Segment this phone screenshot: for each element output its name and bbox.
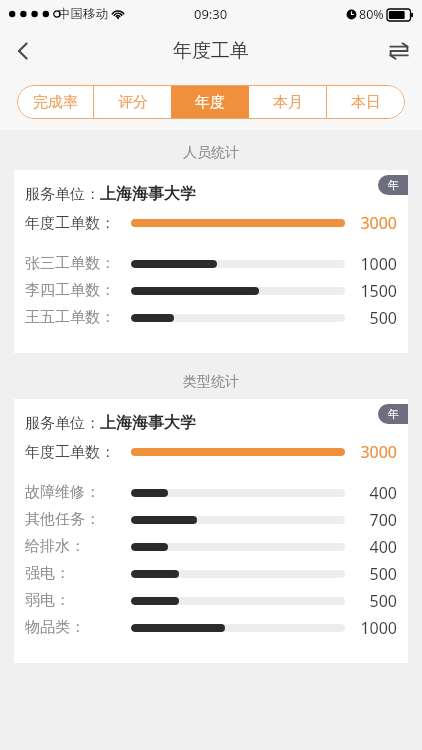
button[interactable]: 本日 xyxy=(327,85,405,119)
staticText: 年度工单 xyxy=(173,39,249,63)
button[interactable]: 年度 xyxy=(171,85,249,119)
staticText: 物品类： xyxy=(25,618,85,637)
staticText: 09:30 xyxy=(194,5,228,23)
staticText: 上海海事大学 xyxy=(100,184,196,204)
staticText: 类型统计 xyxy=(183,373,239,391)
staticText: 中国移动 xyxy=(58,6,108,22)
staticText: 500 xyxy=(345,563,397,585)
button[interactable]: 完成率 xyxy=(17,85,94,119)
staticText: 1500 xyxy=(345,280,397,302)
staticText: 80% xyxy=(359,6,384,23)
button[interactable]: 评分 xyxy=(94,85,171,119)
staticText: 年度工单数： xyxy=(25,443,115,462)
staticText: 700 xyxy=(345,509,397,531)
staticText: 本日 xyxy=(351,93,381,112)
staticText: 评分 xyxy=(118,93,148,112)
staticText: 王五工单数： xyxy=(25,308,115,327)
staticText: 服务单位： xyxy=(25,414,100,433)
staticText: 3000 xyxy=(345,441,397,463)
staticText: 故障维修： xyxy=(25,483,100,502)
staticText: 年 xyxy=(388,407,399,421)
button[interactable]: Switch xyxy=(376,28,422,74)
staticText: 500 xyxy=(345,307,397,329)
staticText: 3000 xyxy=(345,212,397,234)
staticText: 上海海事大学 xyxy=(100,413,196,433)
staticText: 人员统计 xyxy=(183,144,239,162)
staticText: 1000 xyxy=(345,617,397,639)
staticText: 给排水： xyxy=(25,537,85,556)
staticText: 服务单位： xyxy=(25,185,100,204)
staticText: 年 xyxy=(388,178,399,192)
staticText: 李四工单数： xyxy=(25,281,115,300)
button[interactable]: 本月 xyxy=(249,85,327,119)
staticText: 本月 xyxy=(273,93,303,112)
staticText: 400 xyxy=(345,536,397,558)
staticText: 年度工单数： xyxy=(25,214,115,233)
staticText: 张三工单数： xyxy=(25,254,115,273)
staticText: 500 xyxy=(345,590,397,612)
staticText: 年度 xyxy=(195,93,225,112)
staticText: 400 xyxy=(345,482,397,504)
staticText: 弱电： xyxy=(25,591,70,610)
staticText: 1000 xyxy=(345,253,397,275)
staticText: 完成率 xyxy=(33,93,78,112)
button[interactable]: Back xyxy=(0,28,46,74)
staticText: 其他任务： xyxy=(25,510,100,529)
staticText: 强电： xyxy=(25,564,70,583)
